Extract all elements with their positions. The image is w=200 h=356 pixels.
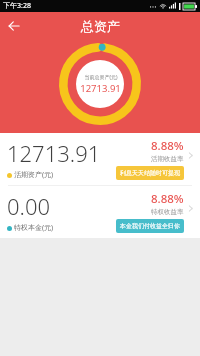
staticText: 特权收益率 [151,208,184,216]
staticText: 8.88% [151,138,184,154]
staticText: 下午3:28 [3,1,31,11]
staticText: 利息天天结随时可提现 [120,169,180,177]
staticText: 8.88% [151,191,184,207]
staticText: 12713.91 [80,82,121,95]
staticText: 12713.91 [7,138,101,168]
staticText: 本金我们付收益全归你 [120,222,180,230]
staticText: 总资产 [81,18,120,34]
staticText: 活期收益率 [151,155,184,163]
button[interactable]: 0.00 [0,186,200,238]
button[interactable]: 12713.91 [0,133,200,185]
staticText: 活期资产(元) [14,170,54,180]
staticText: 当前总资产(元) [84,74,118,81]
staticText: 特权本金(元) [14,223,54,233]
staticText: 0.00 [7,191,51,221]
button[interactable]: Back [0,12,27,39]
